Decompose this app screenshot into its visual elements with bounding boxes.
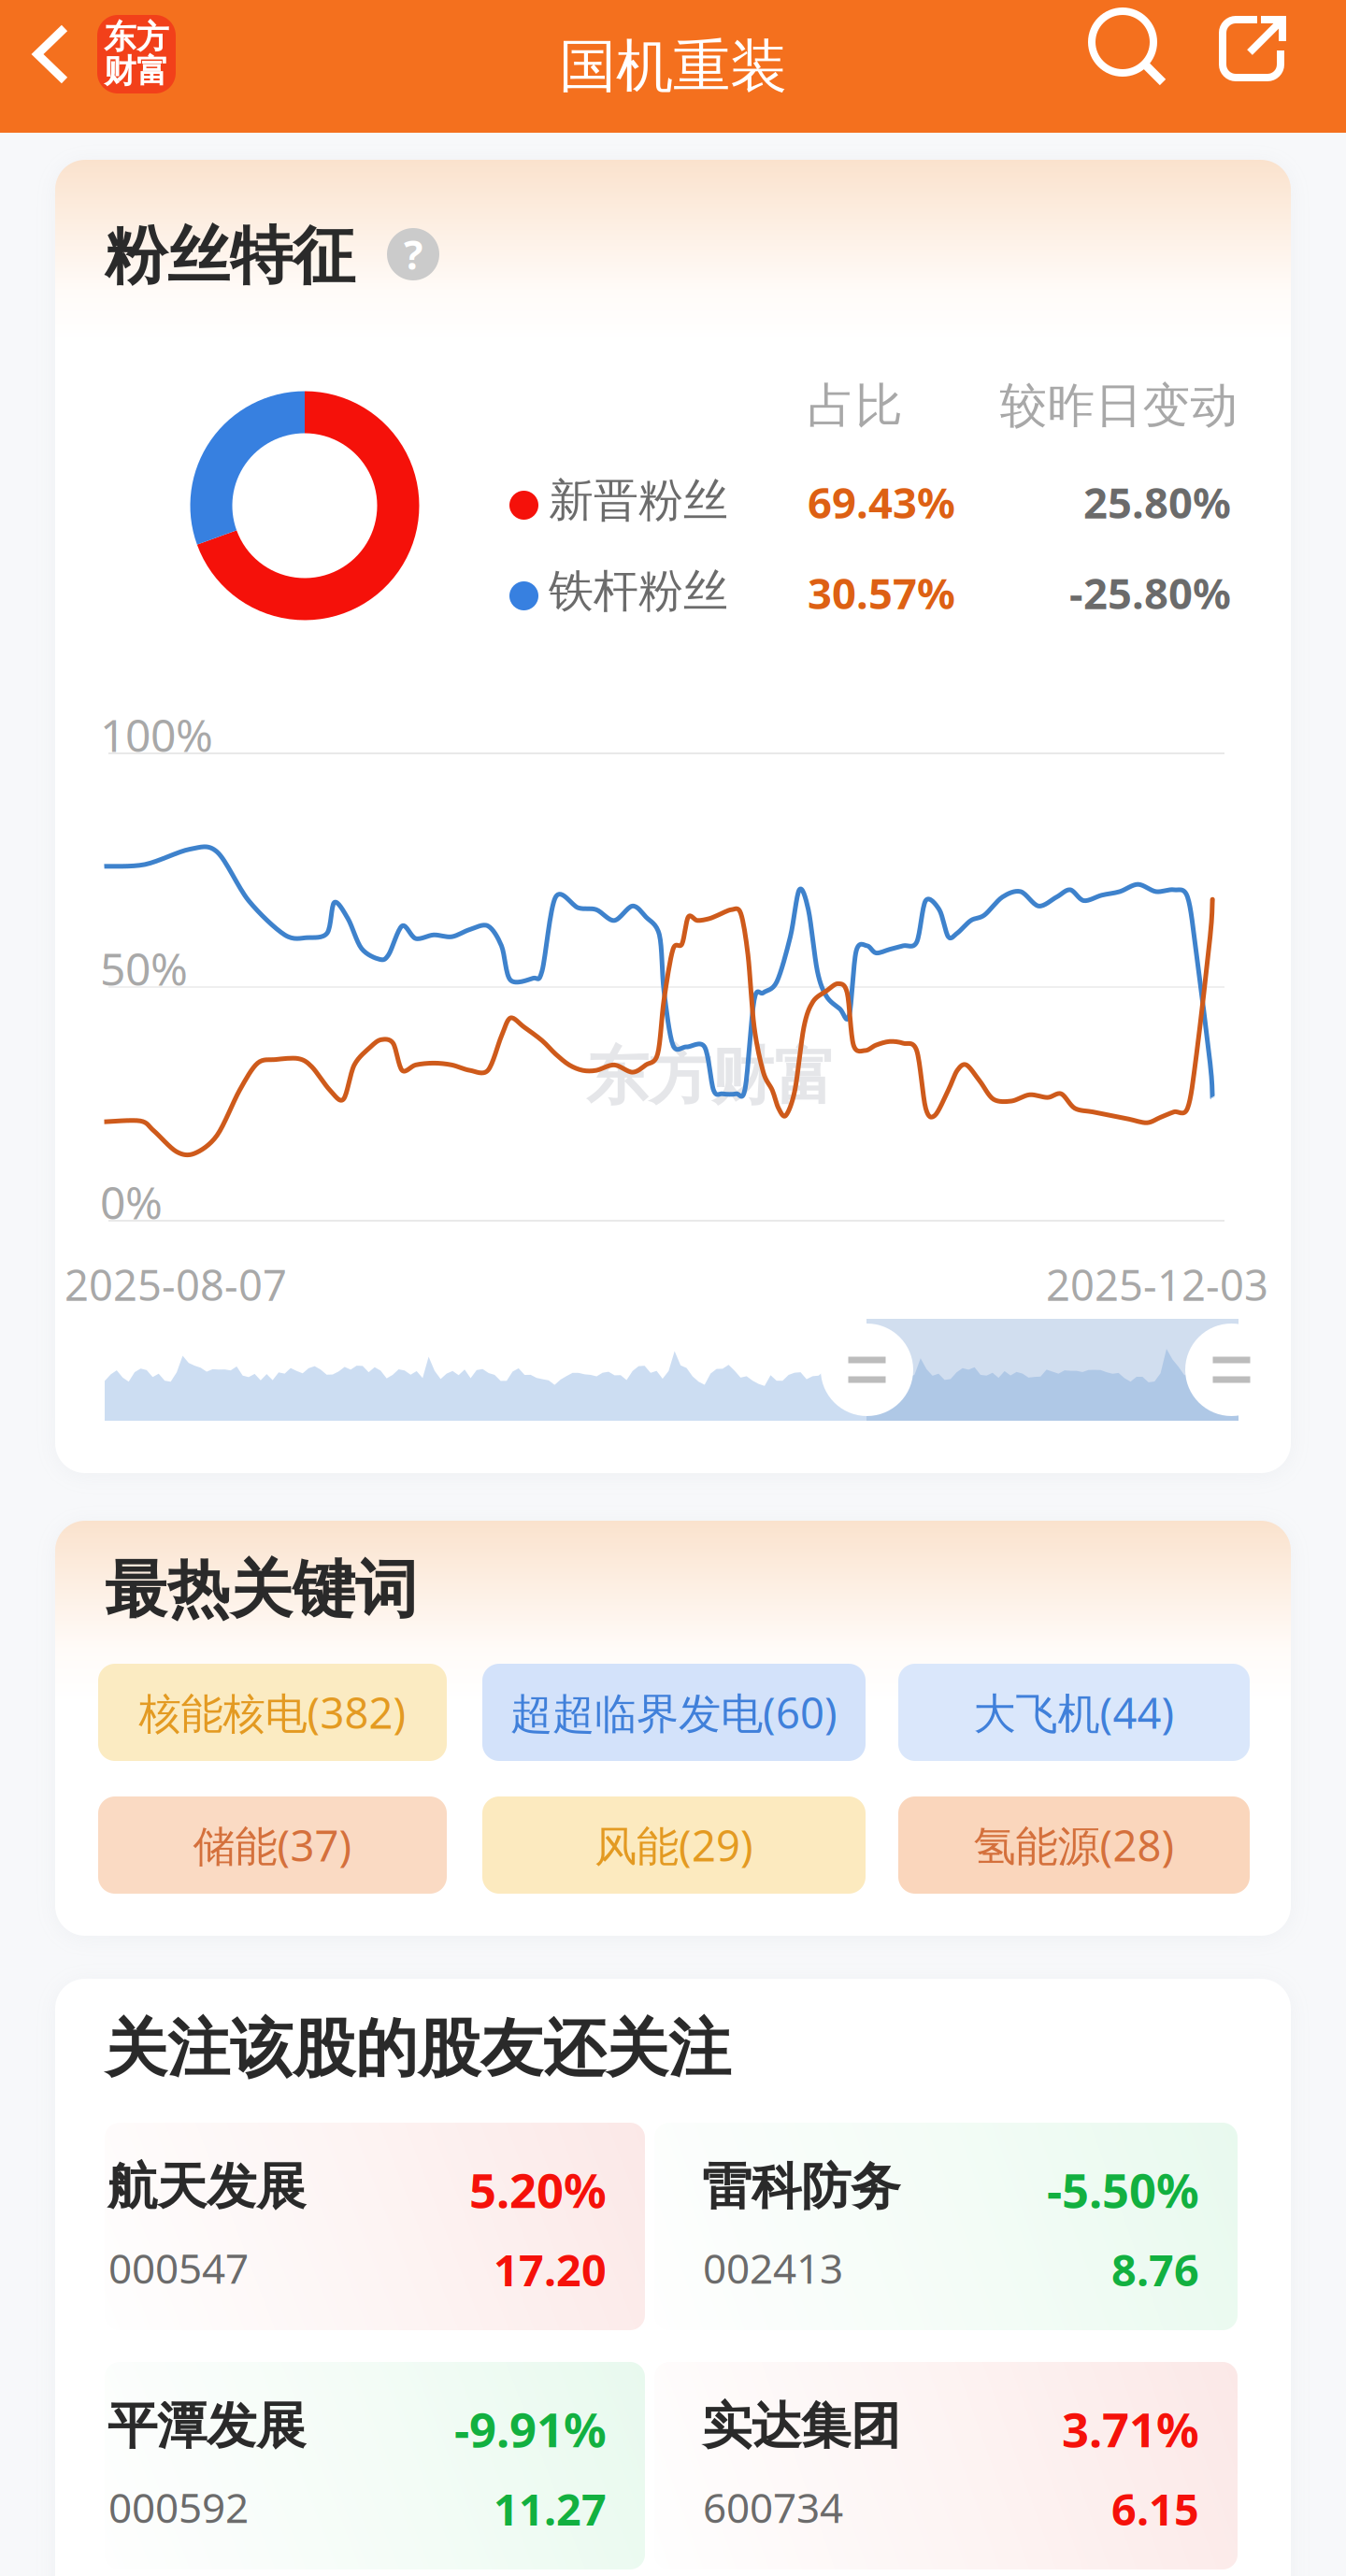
staticText: 30.57%: [808, 565, 955, 621]
staticText: 铁杆粉丝: [549, 564, 728, 619]
staticText: 东方: [104, 17, 169, 57]
button[interactable]: Help: [387, 228, 439, 280]
staticText: 最热关键词: [105, 1552, 418, 1628]
staticText: 新晋粉丝: [549, 473, 728, 528]
staticText: 25.80%: [1083, 474, 1231, 530]
staticText: 航天发展: [107, 2156, 306, 2218]
staticText: -9.91%: [454, 2397, 607, 2460]
button[interactable]: 风能(29): [482, 1796, 866, 1894]
button[interactable]: Back: [0, 0, 107, 133]
staticText: 国机重装: [559, 31, 787, 102]
staticText: 3.71%: [1062, 2397, 1199, 2460]
button[interactable]: 雷科防务: [654, 2123, 1238, 2330]
staticText: 11.27: [494, 2480, 607, 2538]
staticText: 8.76: [1111, 2240, 1199, 2298]
staticText: -25.80%: [1069, 565, 1231, 621]
staticText: 0%: [100, 1172, 163, 1232]
staticText: 600734: [703, 2480, 843, 2534]
staticText: 关注该股的股友还关注: [105, 2011, 731, 2087]
staticText: 实达集团: [702, 2396, 900, 2457]
staticText: ?: [404, 228, 422, 281]
staticText: 财富: [104, 51, 169, 91]
button[interactable]: 航天发展: [105, 2123, 645, 2330]
staticText: 000592: [108, 2480, 249, 2534]
staticText: 核能核电(382): [139, 1684, 406, 1740]
staticText: 002413: [703, 2240, 843, 2295]
staticText: 大飞机(44): [974, 1684, 1174, 1740]
staticText: 雷科防务: [702, 2156, 900, 2218]
staticText: 000547: [108, 2240, 249, 2295]
button[interactable]: Search: [1075, 0, 1187, 133]
staticText: 5.20%: [469, 2158, 607, 2221]
staticText: 17.20: [494, 2240, 607, 2298]
button[interactable]: 实达集团: [654, 2362, 1238, 2569]
button[interactable]: 超超临界发电(60): [482, 1664, 866, 1761]
staticText: 50%: [100, 938, 188, 998]
button[interactable]: 平潭发展: [105, 2362, 645, 2569]
button[interactable]: 氢能源(28): [898, 1796, 1250, 1894]
staticText: 储能(37): [193, 1817, 352, 1873]
staticText: 粉丝特征: [105, 218, 355, 294]
staticText: 2025-08-07: [64, 1256, 287, 1312]
staticText: 超超临界发电(60): [510, 1684, 838, 1740]
staticText: 69.43%: [808, 474, 955, 530]
staticText: 6.15: [1111, 2480, 1199, 2538]
staticText: 风能(29): [594, 1817, 753, 1873]
button[interactable]: Share: [1199, 0, 1308, 133]
staticText: -5.50%: [1047, 2158, 1199, 2221]
staticText: 100%: [100, 705, 213, 764]
button[interactable]: East Money: [97, 15, 176, 93]
staticText: 2025-12-03: [1046, 1256, 1268, 1312]
button[interactable]: 核能核电(382): [98, 1664, 447, 1761]
button[interactable]: 储能(37): [98, 1796, 447, 1894]
staticText: 东方财富: [586, 1038, 837, 1115]
staticText: 氢能源(28): [974, 1817, 1174, 1873]
staticText: 较昨日变动: [1000, 377, 1238, 435]
staticText: 平潭发展: [107, 2396, 306, 2457]
staticText: 占比: [808, 377, 903, 435]
button[interactable]: 大飞机(44): [898, 1664, 1250, 1761]
